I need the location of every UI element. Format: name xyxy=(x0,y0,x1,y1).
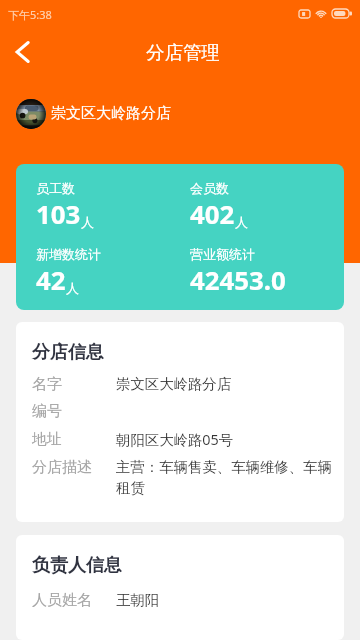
staticText: 会员数 xyxy=(190,180,229,196)
staticText: 下午5:38 xyxy=(8,7,52,22)
staticText: 人 xyxy=(66,280,79,296)
staticText: 崇文区大岭路分店 xyxy=(51,104,171,123)
staticText: 负责人信息 xyxy=(32,554,122,577)
staticText: 地址 xyxy=(32,430,62,449)
staticText: 人 xyxy=(235,214,248,230)
staticText: 分店信息 xyxy=(32,341,104,364)
staticText: 42453.0 xyxy=(190,262,286,297)
staticText: 主营：车辆售卖、车辆维修、车辆租赁 xyxy=(116,458,336,497)
staticText: 员工数 xyxy=(36,180,75,196)
staticText: 编号 xyxy=(32,402,62,421)
staticText: 新增数统计 xyxy=(36,246,101,262)
staticText: 402 xyxy=(190,196,235,231)
staticText: 分店管理 xyxy=(146,41,220,64)
staticText: 103 xyxy=(36,196,81,231)
staticText: 人员姓名 xyxy=(32,591,92,607)
staticText: 崇文区大岭路分店 xyxy=(116,375,232,393)
staticText: 分店描述 xyxy=(32,458,92,477)
staticText: 营业额统计 xyxy=(190,246,255,262)
button[interactable]: 返回 xyxy=(0,30,44,74)
staticText: 人 xyxy=(81,214,94,230)
staticText: 王朝阳 xyxy=(116,591,160,607)
staticText: 名字 xyxy=(32,375,62,394)
staticText: 42 xyxy=(36,262,66,297)
staticText: 朝阳区大岭路05号 xyxy=(116,430,234,450)
